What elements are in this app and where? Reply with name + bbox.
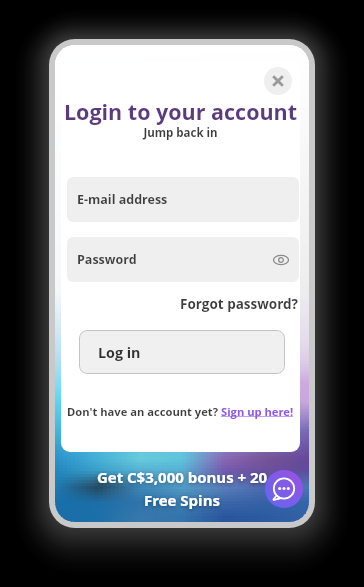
button[interactable]: Log in bbox=[79, 330, 285, 374]
button[interactable]: Password bbox=[67, 237, 299, 282]
button[interactable]: E-mail address bbox=[67, 177, 299, 222]
staticText: Don't have an account yet? bbox=[67, 404, 221, 419]
staticText: E-mail address bbox=[77, 191, 168, 208]
staticText: Login to your account bbox=[61, 97, 300, 126]
staticText: Get C$3,000 bonus + 20 bbox=[55, 467, 309, 487]
staticText: Password bbox=[77, 251, 137, 268]
button[interactable]: Show password bbox=[271, 250, 291, 270]
staticText: Jump back in bbox=[61, 125, 300, 141]
staticText: Free Spins bbox=[55, 490, 309, 510]
staticText: Log in bbox=[98, 343, 141, 362]
button[interactable]: Chat support bbox=[265, 470, 303, 508]
button[interactable]: Sign up here! bbox=[221, 404, 294, 419]
staticText: Forgot password? bbox=[61, 295, 298, 313]
button[interactable]: Close bbox=[264, 67, 292, 95]
